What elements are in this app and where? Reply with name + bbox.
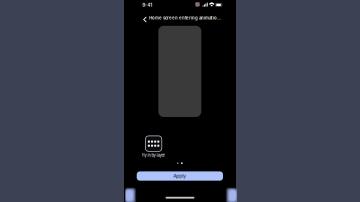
button[interactable]: Fly in by layer xyxy=(142,136,166,158)
staticText: Home screen entering animatio… xyxy=(149,15,221,21)
staticText: Apply xyxy=(173,173,186,179)
staticText: Fly in by layer xyxy=(142,153,166,158)
staticText: 9:41 xyxy=(142,2,152,8)
button[interactable]: Back xyxy=(141,14,149,25)
button[interactable]: Apply xyxy=(137,171,223,181)
